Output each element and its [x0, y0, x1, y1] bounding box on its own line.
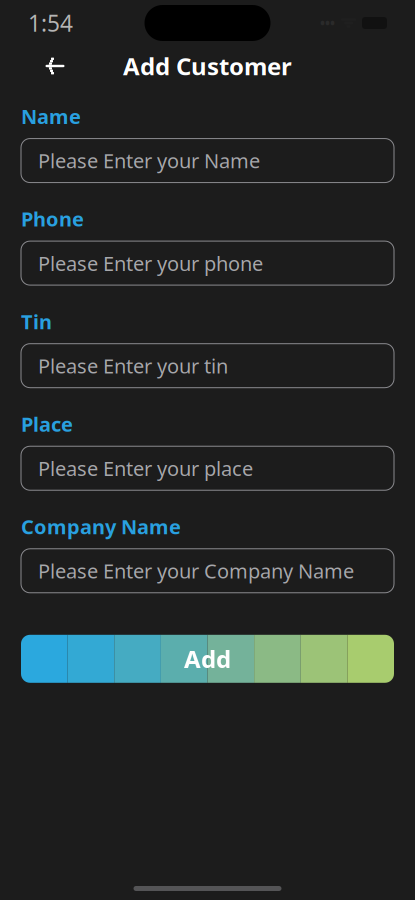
- button[interactable]: Please Enter your Name: [21, 139, 394, 183]
- button[interactable]: Please Enter your phone: [21, 241, 394, 285]
- button[interactable]: Please Enter your tin: [21, 344, 394, 388]
- staticText: Please Enter your place: [38, 455, 253, 482]
- staticText: Phone: [21, 206, 84, 232]
- button[interactable]: Please Enter your place: [21, 446, 394, 490]
- staticText: Please Enter your tin: [38, 352, 228, 379]
- staticText: Tin: [21, 308, 52, 335]
- staticText: Please Enter your Name: [38, 147, 260, 174]
- staticText: Add: [184, 643, 231, 675]
- staticText: Please Enter your phone: [38, 250, 263, 276]
- staticText: Place: [21, 411, 73, 437]
- button[interactable]: Add: [21, 635, 394, 683]
- button[interactable]: Please Enter your Company Name: [21, 549, 394, 593]
- staticText: 1:54: [28, 8, 73, 38]
- staticText: •••: [320, 14, 335, 32]
- staticText: Name: [21, 103, 81, 130]
- staticText: Add Customer: [123, 50, 292, 82]
- button[interactable]: Back: [33, 46, 77, 86]
- staticText: Company Name: [21, 513, 181, 540]
- staticText: Please Enter your Company Name: [38, 557, 354, 584]
